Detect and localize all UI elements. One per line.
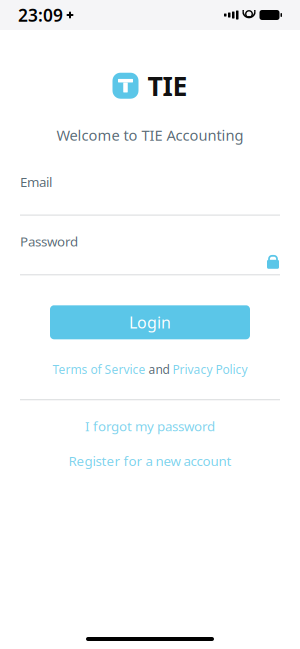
staticText: 23:09 bbox=[18, 3, 63, 26]
button[interactable]: Register for a new account bbox=[56, 447, 243, 475]
staticText: Email bbox=[20, 173, 52, 191]
button[interactable]: Terms of Service bbox=[52, 361, 145, 377]
button[interactable]: Login bbox=[50, 305, 250, 339]
staticText: Login bbox=[129, 312, 171, 333]
button[interactable]: Privacy Policy bbox=[172, 361, 247, 377]
staticText: I forgot my password bbox=[85, 417, 215, 435]
staticText: Password bbox=[20, 233, 78, 250]
staticText: Welcome to TIE Accounting bbox=[56, 125, 243, 145]
staticText: Terms of Service bbox=[52, 361, 145, 377]
staticText: Register for a new account bbox=[68, 452, 231, 470]
button[interactable]: I forgot my password bbox=[73, 412, 227, 440]
staticText: TIE bbox=[147, 68, 187, 103]
staticText: Privacy Policy bbox=[172, 361, 247, 377]
staticText: and bbox=[145, 361, 172, 377]
